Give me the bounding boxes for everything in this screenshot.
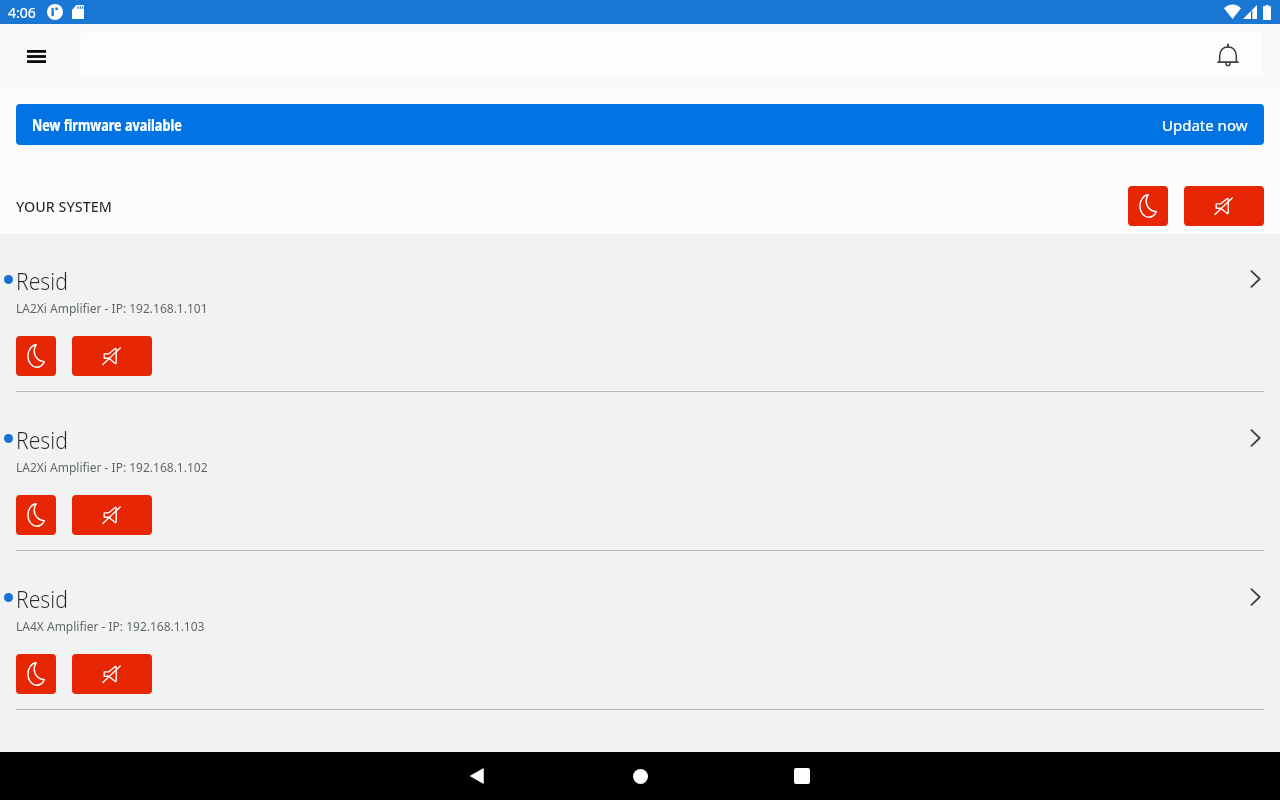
button[interactable]: Home [616, 752, 664, 800]
button[interactable]: Resid [0, 393, 1280, 550]
button[interactable]: Mute [72, 495, 152, 535]
staticText: LA2Xi Amplifier - IP: 192.168.1.102 [16, 459, 208, 475]
button[interactable]: Open details [1241, 583, 1269, 611]
staticText: Resid [16, 424, 68, 455]
staticText: LA4X Amplifier - IP: 192.168.1.103 [16, 618, 205, 634]
button[interactable]: Mute [1184, 186, 1264, 226]
button[interactable]: Resid [0, 234, 1280, 391]
button[interactable]: Notifications [1204, 32, 1252, 80]
button[interactable]: Standby [16, 336, 56, 376]
button[interactable]: Resid [0, 552, 1280, 709]
button[interactable]: Standby [16, 495, 56, 535]
button[interactable]: Standby [1128, 186, 1168, 226]
button[interactable]: Open details [1241, 265, 1269, 293]
button[interactable]: Mute [72, 654, 152, 694]
button[interactable]: Recent apps [778, 752, 826, 800]
button[interactable]: Open details [1241, 424, 1269, 452]
staticText: YOUR SYSTEM [16, 197, 112, 216]
staticText: LA2Xi Amplifier - IP: 192.168.1.101 [16, 300, 208, 316]
button[interactable]: New firmware available [16, 104, 1264, 145]
button[interactable]: Menu [12, 32, 60, 80]
staticText: Resid [16, 583, 68, 614]
button[interactable]: Mute [72, 336, 152, 376]
button[interactable]: Standby [16, 654, 56, 694]
staticText: Resid [16, 265, 68, 296]
staticText: New firmware available [32, 114, 182, 136]
staticText: Update now [1162, 115, 1248, 135]
button[interactable]: Back [453, 752, 501, 800]
staticText: 4:06 [8, 3, 36, 22]
